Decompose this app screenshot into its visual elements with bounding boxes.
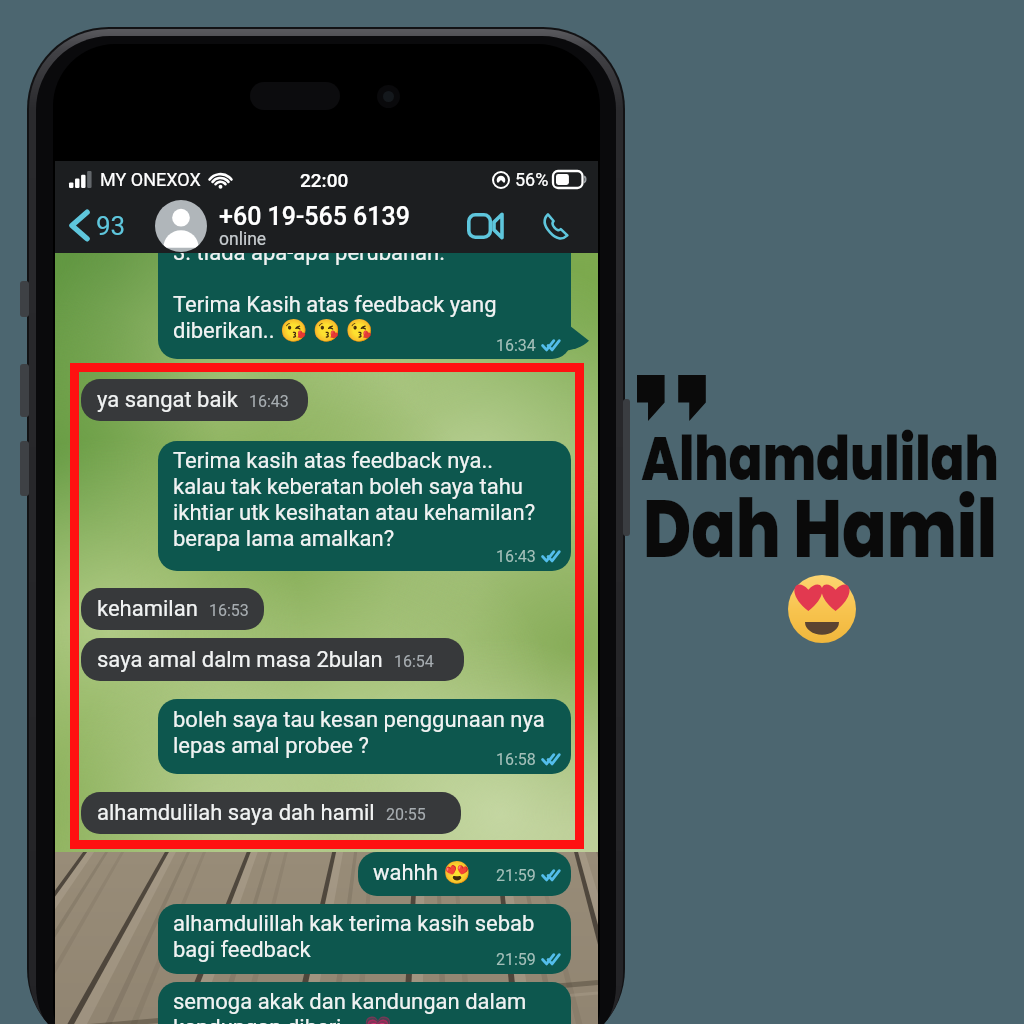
staticText: 21:59 [496,866,536,885]
staticText: boleh saya tau kesan penggunaan nya [173,707,545,733]
button[interactable]: semoga akak dan kandungan dalam [158,982,571,1024]
staticText: kandungan diberi... 💗 [173,1015,392,1024]
staticText: 16:43 [496,547,536,566]
staticText: Terima Kasih atas feedback yang [173,292,497,318]
staticText: ikhtiar utk kesihatan atau kehamilan? [173,500,536,526]
button[interactable]: Voice call [531,202,581,252]
staticText: 16:53 [209,601,249,620]
button[interactable]: Terima kasih atas feedback nya.. [158,441,571,571]
staticText: alhamdulillah kak terima kasih sebab [173,911,535,937]
staticText: diberikan.. 😘 😘 😘 [173,318,373,344]
staticText: 22:00 [300,169,349,191]
staticText: 56% [515,169,549,190]
staticText: berapa lama amalkan? [173,526,395,552]
button[interactable]: Video call [457,203,514,249]
staticText: ya sangat baik [97,387,238,413]
button[interactable]: kehamilan [81,588,264,630]
staticText: Terima kasih atas feedback nya.. [173,448,494,474]
staticText: 16:34 [496,336,536,355]
staticText: wahhh 😍 [373,860,471,886]
staticText: kehamilan [97,596,198,622]
button[interactable]: alhamdulilah saya dah hamil [81,792,461,834]
staticText: 20:55 [386,805,426,824]
staticText: alhamdulilah saya dah hamil [97,800,375,826]
button[interactable]: saya amal dalm masa 2bulan [81,638,464,681]
staticText: 16:58 [496,750,536,769]
button[interactable]: Contact avatar [155,200,207,252]
button[interactable]: alhamdulillah kak terima kasih sebab [158,904,571,974]
button[interactable]: +60 19-565 6139 [219,202,410,252]
button[interactable]: wahhh 😍 [358,852,571,896]
staticText: semoga akak dan kandungan dalam [173,989,527,1015]
staticText: bagi feedback [173,937,311,963]
button[interactable]: ya sangat baik [81,379,308,421]
staticText: Alhamdulilah [574,416,1024,501]
staticText: +60 19-565 6139 [219,202,410,231]
staticText: kalau tak keberatan boleh saya tahu [173,474,523,500]
staticText: 16:54 [394,652,434,671]
button[interactable]: boleh saya tau kesan penggunaan nya [158,699,571,774]
staticText: 21:59 [496,950,536,969]
staticText: saya amal dalm masa 2bulan [97,647,383,673]
staticText: Dah Hamil [574,473,1024,585]
staticText: 3. tiada apa-apa perubahan. [173,253,446,266]
staticText: 16:43 [249,392,289,411]
staticText: MY ONEXOX [100,169,201,190]
button[interactable]: Back, 93 chats [64,204,132,247]
staticText: lepas amal probee ? [173,733,369,759]
button[interactable]: 3. tiada apa-apa perubahan. [158,253,571,359]
staticText: online [219,229,267,250]
staticText: 93 [96,211,126,241]
